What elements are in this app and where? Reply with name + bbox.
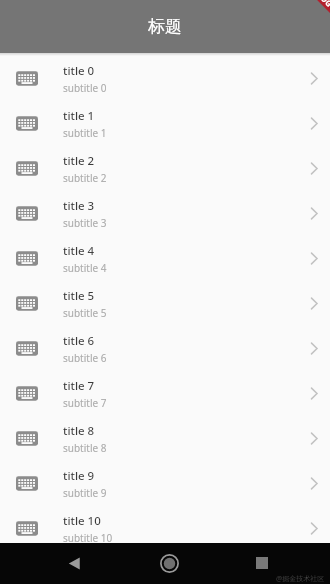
- staticText: subtitle 8: [63, 441, 107, 455]
- button[interactable]: title 10: [0, 506, 330, 551]
- button[interactable]: title 1: [0, 101, 330, 146]
- button[interactable]: title 5: [0, 281, 330, 326]
- staticText: title 0: [63, 63, 95, 79]
- staticText: title 3: [63, 198, 95, 214]
- staticText: subtitle 9: [63, 486, 107, 500]
- staticText: title 5: [63, 288, 95, 304]
- staticText: subtitle 0: [63, 81, 107, 95]
- staticText: title 8: [63, 423, 95, 439]
- button[interactable]: title 4: [0, 236, 330, 281]
- staticText: subtitle 10: [63, 531, 113, 545]
- staticText: title 6: [63, 333, 95, 349]
- button[interactable]: title 9: [0, 461, 330, 506]
- staticText: DEBUG: [308, 0, 330, 9]
- staticText: title 10: [63, 513, 101, 529]
- staticText: subtitle 3: [63, 216, 107, 230]
- staticText: subtitle 2: [63, 171, 107, 185]
- staticText: @掘金技术社区: [276, 574, 325, 584]
- staticText: subtitle 5: [63, 306, 107, 320]
- button[interactable]: Home: [151, 545, 187, 581]
- staticText: 标题: [148, 16, 182, 37]
- button[interactable]: title 2: [0, 146, 330, 191]
- staticText: title 7: [63, 378, 95, 394]
- button[interactable]: Back: [56, 545, 92, 581]
- button[interactable]: title 0: [0, 56, 330, 101]
- staticText: subtitle 7: [63, 396, 107, 410]
- button[interactable]: title 7: [0, 371, 330, 416]
- staticText: subtitle 1: [63, 126, 107, 140]
- button[interactable]: title 3: [0, 191, 330, 236]
- button[interactable]: title 8: [0, 416, 330, 461]
- staticText: title 9: [63, 468, 95, 484]
- staticText: subtitle 6: [63, 351, 107, 365]
- staticText: title 2: [63, 153, 95, 169]
- button[interactable]: title 6: [0, 326, 330, 371]
- staticText: subtitle 4: [63, 261, 107, 275]
- staticText: title 4: [63, 243, 95, 259]
- button[interactable]: Recents: [244, 545, 280, 581]
- staticText: title 1: [63, 108, 95, 124]
